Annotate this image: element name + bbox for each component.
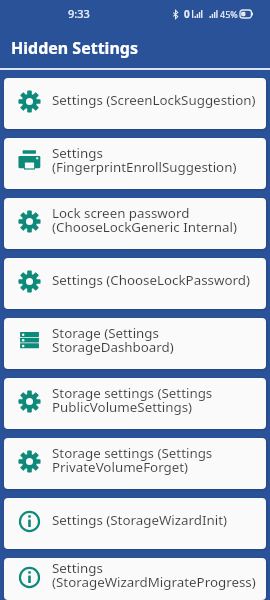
button[interactable]: Storage settings (Settings <box>4 438 266 489</box>
staticText: 9:33 <box>68 6 90 21</box>
staticText: Storage (Settings StorageDashboard) <box>52 324 174 356</box>
staticText: Storage settings (Settings PublicVolumeS… <box>52 384 213 416</box>
button[interactable]: Lock screen password <box>4 198 266 249</box>
staticText: Settings (FingerprintEnrollSuggestion) <box>52 144 237 176</box>
button[interactable]: Settings <box>4 138 266 189</box>
button[interactable]: Settings (ScreenLockSuggestion) <box>4 78 266 129</box>
staticText: 45% <box>220 8 238 20</box>
staticText: Settings (ScreenLockSuggestion) <box>52 91 256 109</box>
staticText: Settings (StorageWizardInit) <box>52 511 228 529</box>
staticText: Settings (StorageWizardMigrateProgress) <box>52 559 256 591</box>
staticText: Hidden Settings <box>11 37 138 59</box>
button[interactable]: Storage (Settings <box>4 318 266 369</box>
button[interactable]: Storage settings (Settings <box>4 378 266 429</box>
button[interactable]: Settings <box>4 558 266 600</box>
staticText: Lock screen password (ChooseLockGeneric … <box>52 204 237 236</box>
button[interactable]: Settings (StorageWizardInit) <box>4 498 266 549</box>
staticText: Settings (ChooseLockPassword) <box>52 271 250 289</box>
staticText: 0 <box>184 7 190 21</box>
staticText: Storage settings (Settings PrivateVolume… <box>52 444 213 476</box>
button[interactable]: Settings (ChooseLockPassword) <box>4 258 266 309</box>
